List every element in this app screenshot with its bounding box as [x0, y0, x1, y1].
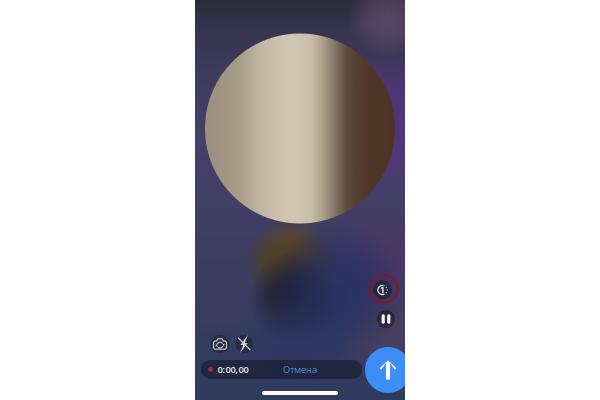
button[interactable]: View once — [373, 280, 392, 299]
button[interactable]: 0:00,00 — [201, 360, 362, 379]
staticText: 0:00,00 — [217, 363, 248, 376]
staticText: Отмена — [283, 363, 317, 376]
button[interactable]: Flip camera — [210, 334, 229, 353]
button[interactable]: Send — [365, 347, 411, 393]
button[interactable]: Pause recording — [377, 310, 395, 328]
button[interactable]: Flash off — [235, 335, 253, 353]
